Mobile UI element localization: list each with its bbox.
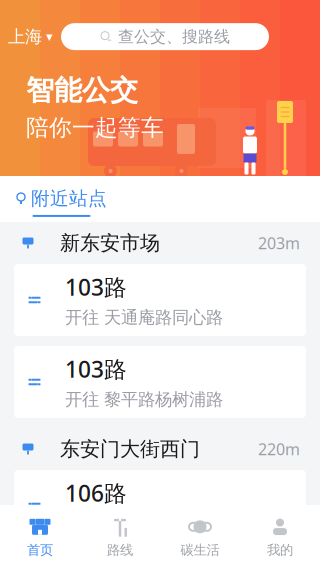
staticText: 碳生活: [180, 542, 219, 558]
button[interactable]: 我的: [240, 505, 320, 569]
button[interactable]: 东安门大街西门: [0, 428, 320, 470]
staticText: ▾: [46, 29, 53, 44]
staticText: 开往 黎平路杨树浦路: [65, 389, 223, 410]
staticText: 查公交、搜路线: [118, 27, 230, 46]
staticText: 106路: [65, 478, 127, 508]
staticText: 103路: [65, 272, 127, 302]
staticText: 路线: [107, 542, 133, 558]
button[interactable]: 新东安市场: [0, 222, 320, 264]
staticText: 陪你一起等车: [26, 114, 164, 141]
button[interactable]: 103路: [0, 346, 320, 428]
button[interactable]: 碳生活: [160, 505, 240, 569]
button[interactable]: 上海: [0, 20, 53, 53]
staticText: 我的: [267, 542, 293, 558]
staticText: 开往 天通庵路同心路: [65, 307, 223, 328]
staticText: 上海: [8, 26, 42, 47]
staticText: 附近站点: [31, 187, 107, 210]
staticText: 智能公交: [26, 73, 138, 108]
staticText: 220m: [258, 438, 300, 460]
button[interactable]: 106路: [0, 470, 320, 552]
staticText: 东安门大街西门: [60, 437, 200, 461]
button[interactable]: 首页: [0, 505, 80, 569]
staticText: 103路: [65, 354, 127, 384]
button[interactable]: 路线: [80, 505, 160, 569]
staticText: 首页: [27, 542, 53, 558]
staticText: 203m: [258, 232, 300, 254]
staticText: 开往 北京站东街: [65, 513, 189, 534]
button[interactable]: 附近站点: [0, 175, 107, 223]
button[interactable]: 103路: [0, 264, 320, 346]
staticText: 新东安市场: [60, 231, 160, 255]
button[interactable]: 查公交、搜路线: [61, 23, 269, 50]
